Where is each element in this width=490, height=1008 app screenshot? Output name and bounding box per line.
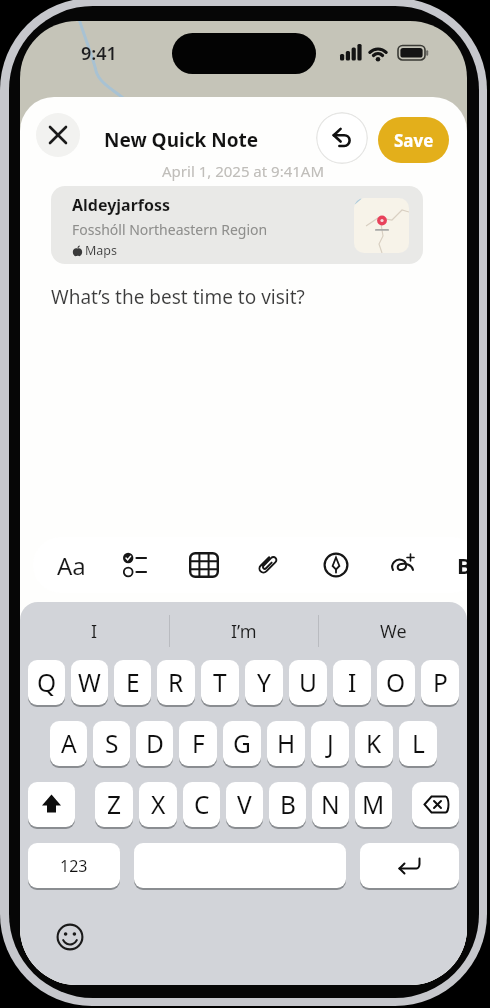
staticText: B — [280, 788, 296, 821]
button[interactable] — [134, 843, 346, 890]
staticText: 9:41 — [81, 41, 117, 66]
button[interactable]: P — [421, 660, 459, 707]
button[interactable]: Aldeyjarfoss — [51, 186, 423, 264]
button[interactable]: B — [269, 782, 306, 829]
button[interactable]: S — [93, 721, 130, 768]
staticText: Fosshóll Northeastern Region — [72, 220, 268, 239]
staticText: X — [151, 788, 166, 821]
button[interactable] — [379, 537, 427, 593]
staticText: H — [277, 727, 296, 760]
button[interactable]: F — [179, 721, 217, 768]
staticText: Q — [37, 666, 57, 699]
button[interactable]: D — [136, 721, 173, 768]
button[interactable]: E — [114, 660, 151, 707]
staticText: I — [91, 619, 98, 644]
button[interactable]: Aa — [49, 537, 93, 593]
staticText: Y — [257, 666, 271, 699]
button[interactable]: W — [71, 660, 108, 707]
button[interactable] — [312, 537, 360, 593]
button[interactable]: Y — [245, 660, 283, 707]
staticText: O — [386, 666, 406, 699]
staticText: Aldeyjarfoss — [72, 194, 171, 216]
staticText: D — [146, 727, 164, 760]
staticText: P — [433, 666, 448, 699]
button[interactable]: U — [289, 660, 327, 707]
button[interactable]: A — [50, 721, 87, 768]
staticText: G — [233, 727, 251, 760]
button[interactable] — [111, 537, 159, 593]
button[interactable]: X — [139, 782, 177, 829]
staticText: A — [61, 727, 77, 760]
staticText: J — [327, 727, 334, 760]
staticText: V — [237, 788, 252, 821]
staticText: K — [366, 727, 382, 760]
staticText: W — [78, 666, 101, 699]
staticText: Z — [107, 788, 122, 821]
staticText: T — [213, 666, 227, 699]
button[interactable]: Z — [95, 782, 133, 829]
staticText: What’s the best time to visit? — [51, 284, 305, 310]
button[interactable] — [412, 782, 459, 829]
button[interactable] — [360, 843, 459, 890]
staticText: April 1, 2025 at 9:41AM — [162, 161, 325, 181]
button[interactable]: L — [399, 721, 437, 768]
staticText: Maps — [85, 242, 118, 259]
staticText: N — [321, 788, 340, 821]
staticText: F — [192, 727, 205, 760]
button[interactable]: G — [223, 721, 261, 768]
button[interactable]: B — [451, 537, 467, 593]
button[interactable]: V — [226, 782, 263, 829]
staticText: C — [194, 788, 210, 821]
button[interactable]: K — [355, 721, 393, 768]
button[interactable] — [56, 923, 84, 951]
button[interactable]: O — [377, 660, 415, 707]
staticText: Aa — [57, 549, 86, 582]
button[interactable] — [28, 782, 75, 829]
button[interactable] — [316, 112, 368, 164]
button[interactable]: I — [20, 611, 169, 651]
staticText: U — [299, 666, 317, 699]
button[interactable]: C — [183, 782, 220, 829]
button[interactable]: H — [267, 721, 305, 768]
button[interactable]: R — [157, 660, 195, 707]
staticText: New Quick Note — [104, 127, 259, 153]
button[interactable]: M — [355, 782, 392, 829]
staticText: M — [362, 788, 385, 821]
staticText: B — [457, 550, 467, 580]
button[interactable]: T — [201, 660, 239, 707]
button[interactable] — [244, 537, 290, 593]
staticText: Save — [394, 129, 434, 152]
staticText: I’m — [231, 619, 257, 644]
button[interactable]: I — [333, 660, 371, 707]
button[interactable]: 123 — [28, 843, 120, 890]
button[interactable]: Q — [28, 660, 65, 707]
button[interactable] — [180, 537, 228, 593]
staticText: S — [105, 727, 119, 760]
staticText: We — [380, 619, 407, 644]
button[interactable]: J — [311, 721, 349, 768]
button[interactable] — [36, 113, 80, 157]
button[interactable]: We — [319, 611, 467, 651]
staticText: L — [412, 727, 425, 760]
staticText: I — [348, 666, 357, 699]
staticText: E — [126, 666, 140, 699]
button[interactable]: I’m — [170, 611, 318, 651]
button[interactable]: Save — [378, 117, 449, 163]
staticText: R — [168, 666, 184, 699]
staticText: 123 — [60, 855, 88, 877]
button[interactable]: N — [312, 782, 349, 829]
